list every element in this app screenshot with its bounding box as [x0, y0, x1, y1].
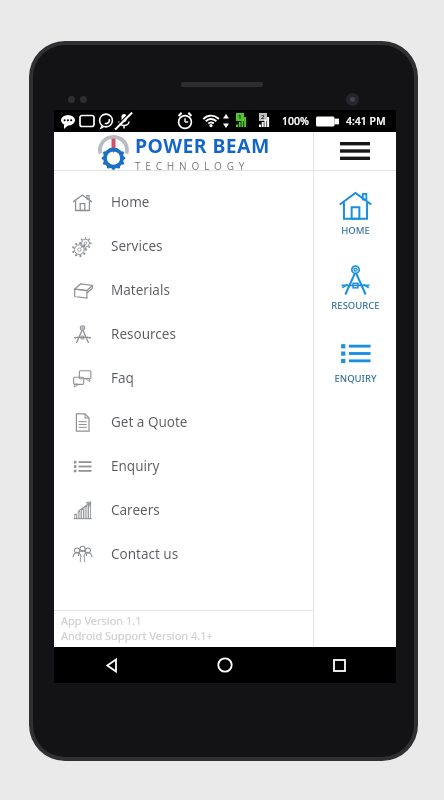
staticText: Faq — [111, 369, 134, 387]
button[interactable]: Recent apps — [282, 647, 396, 683]
button[interactable]: ENQUIRY — [333, 336, 378, 385]
button[interactable]: Open navigation menu — [314, 132, 396, 170]
button[interactable]: RESOURCE — [330, 263, 381, 312]
button[interactable]: Resources — [54, 312, 313, 356]
button[interactable]: Contact us — [54, 532, 313, 576]
button[interactable]: Get a Quote — [54, 400, 313, 444]
button[interactable]: Home — [54, 180, 313, 224]
button[interactable]: Enquiry — [54, 444, 313, 488]
button[interactable]: Services — [54, 224, 313, 268]
staticText: T E C H N O L O G Y — [135, 159, 246, 170]
button[interactable]: HOME — [337, 188, 374, 237]
staticText: ENQUIRY — [334, 372, 377, 385]
staticText: Android Support Version 4.1+ — [61, 628, 213, 643]
staticText: Careers — [111, 501, 160, 519]
button[interactable]: Careers — [54, 488, 313, 532]
button[interactable]: Home — [168, 647, 282, 683]
staticText: HOME — [341, 224, 370, 237]
staticText: 4:41 PM — [346, 114, 386, 128]
button[interactable]: Materials — [54, 268, 313, 312]
staticText: Services — [111, 237, 163, 255]
staticText: Home — [111, 193, 150, 211]
staticText: App Version 1.1 — [61, 613, 142, 628]
button[interactable]: Back — [54, 647, 168, 683]
staticText: Materials — [111, 281, 170, 299]
staticText: Enquiry — [111, 457, 160, 475]
staticText: Resources — [111, 325, 176, 343]
staticText: Contact us — [111, 545, 179, 563]
button[interactable]: Faq — [54, 356, 313, 400]
staticText: 1 — [238, 113, 242, 121]
staticText: Get a Quote — [111, 413, 188, 431]
staticText: POWER BEAM — [135, 132, 270, 159]
staticText: 100% — [282, 114, 309, 128]
staticText: 2 — [261, 113, 265, 121]
staticText: RESOURCE — [331, 299, 380, 312]
